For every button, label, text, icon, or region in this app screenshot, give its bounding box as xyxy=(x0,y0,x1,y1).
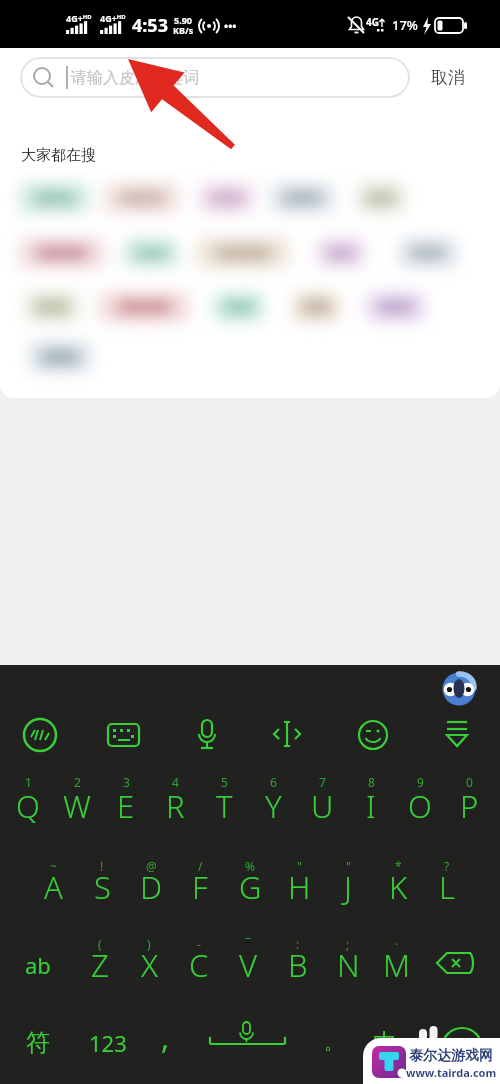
button[interactable]: A xyxy=(33,862,73,912)
button[interactable]: J xyxy=(328,862,368,912)
button[interactable]: L xyxy=(427,862,467,912)
button[interactable]: Y xyxy=(253,781,293,831)
button[interactable] xyxy=(441,670,477,706)
button[interactable]: H xyxy=(279,862,319,912)
button[interactable] xyxy=(365,291,426,323)
button[interactable]: G xyxy=(230,862,270,912)
staticText: I xyxy=(366,785,376,827)
button[interactable]: 请输入皮肤关键词 xyxy=(20,57,410,98)
staticText: C xyxy=(189,944,209,986)
button[interactable] xyxy=(18,237,105,269)
staticText: R xyxy=(166,785,185,827)
button[interactable] xyxy=(435,951,475,979)
button[interactable] xyxy=(316,237,366,269)
staticText: E xyxy=(117,785,135,827)
button[interactable] xyxy=(398,237,458,269)
button[interactable]: M xyxy=(377,940,417,990)
button[interactable]: O xyxy=(400,781,440,831)
staticText: 0 xyxy=(466,774,473,790)
staticText: Z xyxy=(91,944,109,986)
staticText: 9 xyxy=(417,774,424,790)
button[interactable] xyxy=(292,291,340,323)
staticText: F xyxy=(192,866,208,908)
button[interactable] xyxy=(28,341,92,373)
button[interactable]: Q xyxy=(8,781,48,831)
button[interactable] xyxy=(212,291,265,323)
staticText: 。 xyxy=(324,1032,342,1055)
button[interactable]: W xyxy=(57,781,97,831)
staticText: S xyxy=(94,866,111,908)
staticText: M xyxy=(383,944,411,986)
staticText: % xyxy=(245,858,255,874)
button[interactable]: D xyxy=(131,862,171,912)
staticText: www.tairda.com xyxy=(406,1065,497,1080)
button[interactable]: N xyxy=(328,940,368,990)
staticText: W xyxy=(63,785,91,827)
button[interactable]: 符 xyxy=(8,1018,68,1068)
button[interactable] xyxy=(122,237,180,269)
staticText: 4:53 xyxy=(132,13,168,38)
staticText: · xyxy=(395,936,399,952)
button[interactable] xyxy=(270,182,335,214)
staticText: 泰尔达游戏网 xyxy=(409,1047,493,1065)
staticText: 5 xyxy=(221,774,228,790)
staticText: 中 xyxy=(373,1028,397,1058)
staticText: P xyxy=(460,785,479,827)
staticText: Y xyxy=(265,785,282,827)
button[interactable]: V xyxy=(228,940,268,990)
button[interactable]: E xyxy=(106,781,146,831)
button[interactable] xyxy=(437,1023,487,1073)
button[interactable]: P xyxy=(449,781,489,831)
button[interactable]: , xyxy=(145,1012,185,1062)
button[interactable] xyxy=(356,182,406,214)
staticText: 5.90 xyxy=(174,14,192,26)
button[interactable]: T xyxy=(204,781,244,831)
staticText: 4 xyxy=(172,774,179,790)
button[interactable]: B xyxy=(278,940,318,990)
button[interactable]: 中 xyxy=(360,1018,410,1068)
staticText: ( xyxy=(98,936,102,952)
staticText: 8 xyxy=(368,774,375,790)
staticText: Q xyxy=(16,785,40,827)
staticText: " xyxy=(346,858,351,874)
button[interactable]: 取消 xyxy=(378,52,500,102)
staticText: G xyxy=(239,866,262,908)
staticText: ; xyxy=(346,936,350,952)
staticText: D xyxy=(140,866,163,908)
button[interactable]: K xyxy=(378,862,418,912)
button[interactable]: 123 xyxy=(78,1018,138,1068)
button[interactable]: I xyxy=(351,781,391,831)
button[interactable] xyxy=(18,182,90,214)
button[interactable]: C xyxy=(179,940,219,990)
staticText: 17% xyxy=(392,16,418,34)
button[interactable] xyxy=(196,237,290,269)
button[interactable] xyxy=(198,182,255,214)
staticText: H xyxy=(288,866,311,908)
staticText: N xyxy=(337,944,360,986)
staticText: : xyxy=(296,936,300,952)
staticText: - xyxy=(197,936,201,952)
button[interactable]: ab xyxy=(8,940,68,990)
button[interactable]: U xyxy=(302,781,342,831)
staticText: V xyxy=(239,944,258,986)
button[interactable] xyxy=(24,291,80,323)
button[interactable] xyxy=(98,291,190,323)
button[interactable]: S xyxy=(82,862,122,912)
staticText: ~ xyxy=(50,858,57,874)
button[interactable]: R xyxy=(155,781,195,831)
staticText: K xyxy=(389,866,408,908)
staticText: L xyxy=(439,866,455,908)
staticText: * xyxy=(395,858,402,874)
button[interactable]: Z xyxy=(80,940,120,990)
staticText: , xyxy=(161,1017,170,1058)
button[interactable]: 。 xyxy=(313,1018,353,1068)
staticText: 符 xyxy=(26,1028,50,1058)
staticText: T xyxy=(216,785,233,827)
button[interactable] xyxy=(103,182,180,214)
button[interactable]: F xyxy=(180,862,220,912)
staticText: 大家都在搜 xyxy=(21,146,96,165)
button[interactable]: X xyxy=(129,940,169,990)
staticText: 4G+ᴴᴰ xyxy=(66,12,92,24)
button[interactable] xyxy=(205,1020,290,1060)
staticText: 4G xyxy=(366,15,379,29)
